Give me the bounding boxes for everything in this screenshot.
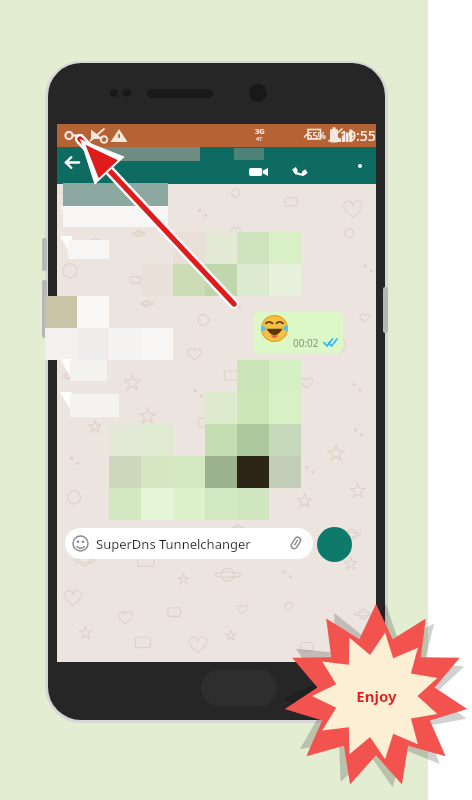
- staticText: SuperDns Tunnelchanger: [96, 535, 251, 553]
- staticText: 4T: [256, 135, 263, 142]
- staticText: 3G: [255, 126, 265, 136]
- staticText: 19:55: [340, 126, 376, 145]
- staticText: 55%: [307, 129, 326, 142]
- button[interactable]: More options: [349, 150, 371, 181]
- button[interactable]: 00:02: [253, 311, 343, 354]
- button[interactable]: Back: [57, 147, 88, 178]
- staticText: 00:02: [293, 336, 319, 350]
- button[interactable]: SuperDns Tunnelchanger: [65, 528, 313, 559]
- button[interactable]: Call: [286, 162, 312, 180]
- staticText: Enjoy: [356, 686, 397, 706]
- button[interactable]: Send voice message: [317, 527, 352, 562]
- button[interactable]: Video call: [243, 164, 273, 180]
